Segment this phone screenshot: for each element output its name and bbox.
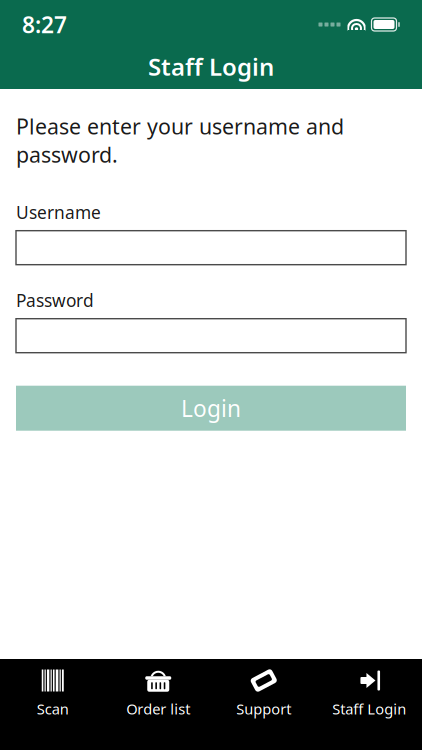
button[interactable]: Scan xyxy=(0,659,105,732)
staticText: Staff Login xyxy=(332,699,406,718)
staticText: Scan xyxy=(37,699,69,718)
staticText: Support xyxy=(236,699,291,718)
button[interactable]: Login xyxy=(16,386,406,431)
staticText: Username xyxy=(16,201,101,224)
staticText: 8:27 xyxy=(22,9,67,39)
button[interactable]: Order list xyxy=(105,659,211,732)
staticText: Staff Login xyxy=(148,51,274,82)
staticText: Please enter your username and password. xyxy=(16,112,344,169)
staticText: Password xyxy=(16,289,94,312)
button[interactable]: Support xyxy=(211,659,316,732)
staticText: Login xyxy=(181,393,241,423)
button[interactable]: Staff Login xyxy=(316,659,422,732)
staticText: Order list xyxy=(126,699,190,718)
